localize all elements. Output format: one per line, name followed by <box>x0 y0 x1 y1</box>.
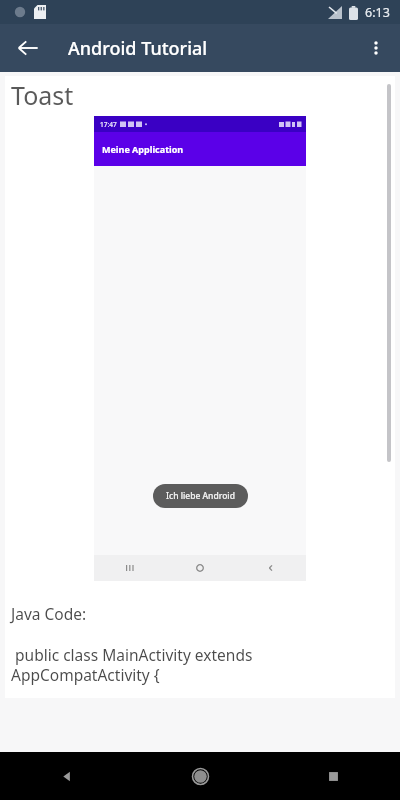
button[interactable]: Back <box>4 24 52 72</box>
staticText: Android Tutorial <box>68 36 208 61</box>
staticText: Ich liebe Android <box>166 490 235 502</box>
staticText: public class MainActivity extends AppCom… <box>11 644 365 686</box>
staticText: 17:47 <box>100 120 117 129</box>
staticText: Meine Application <box>102 143 184 155</box>
staticText: 6:13 <box>365 4 390 21</box>
staticText: Java Code: <box>11 603 87 624</box>
button[interactable]: Recent apps <box>267 752 400 800</box>
button[interactable]: Home <box>134 752 267 800</box>
button[interactable]: Back <box>0 752 134 800</box>
button[interactable]: More options <box>352 24 400 72</box>
staticText: Toast <box>11 78 74 112</box>
